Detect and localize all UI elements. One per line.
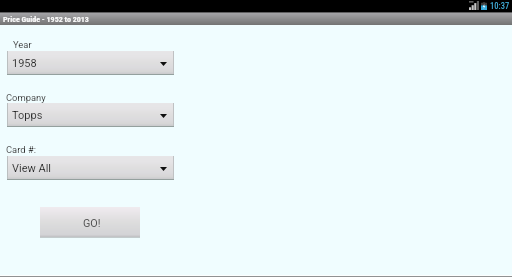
staticText: GO! [83,217,101,230]
staticText: Price Guide - 1952 to 2013 [3,15,89,24]
staticText: 10:37 [490,1,510,11]
staticText: 1958 [12,57,37,70]
staticText: Year [13,39,32,50]
staticText: View All [12,162,52,175]
button[interactable]: GO! [40,207,140,238]
button[interactable]: Topps [7,103,174,127]
button[interactable]: 1958 [7,51,174,75]
staticText: Topps [12,109,43,122]
staticText: Card #: [6,144,36,155]
button[interactable]: View All [7,156,174,180]
staticText: Company [6,92,46,103]
